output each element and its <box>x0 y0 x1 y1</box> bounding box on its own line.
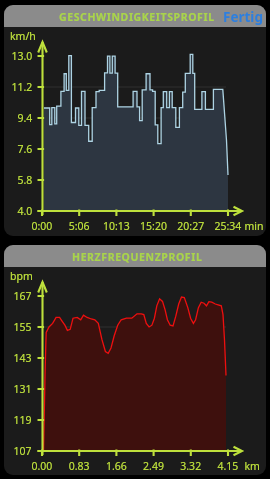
staticText: HERZFREQUENZPROFIL <box>72 250 203 264</box>
button[interactable]: Fertig <box>221 5 265 27</box>
staticText: Fertig <box>223 8 263 26</box>
staticText: GESCHWINDIGKEITSPROFIL <box>59 10 215 24</box>
